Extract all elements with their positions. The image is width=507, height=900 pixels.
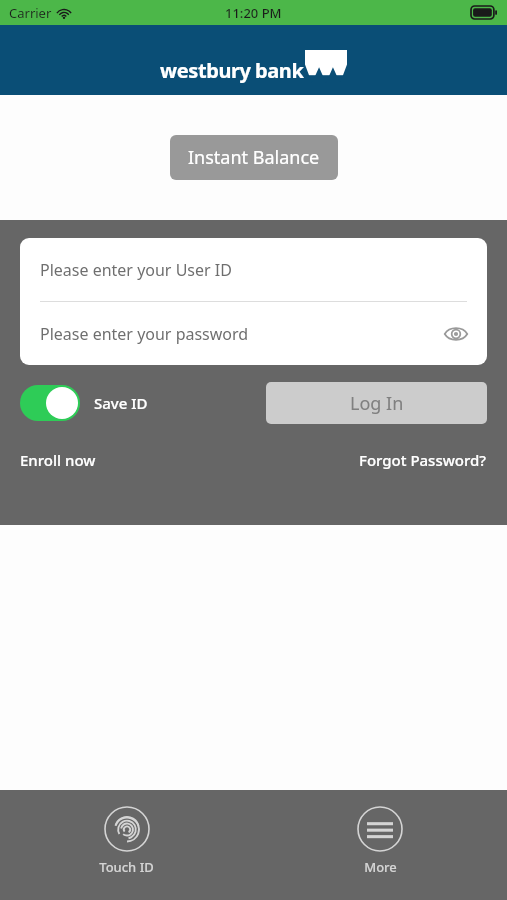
staticText: Forgot Password? [359, 450, 487, 470]
button[interactable]: Log In [266, 382, 487, 424]
button[interactable]: Please enter your password [20, 302, 487, 365]
staticText: Carrier [9, 4, 52, 22]
button[interactable]: Enroll now [20, 450, 96, 470]
button[interactable]: Please enter your User ID [20, 238, 487, 301]
staticText: 11:20 PM [225, 4, 282, 22]
staticText: Log In [350, 391, 404, 416]
button[interactable]: Touch ID login [85, 804, 168, 878]
staticText: Please enter your password [40, 323, 249, 345]
staticText: Save ID [94, 393, 148, 413]
staticText: Touch ID [99, 858, 154, 876]
staticText: westbury [160, 57, 251, 84]
button[interactable]: Show password [439, 317, 473, 351]
button[interactable]: Forgot Password? [359, 450, 487, 470]
button[interactable]: Save ID toggle, on [20, 385, 148, 421]
button[interactable]: Instant Balance [170, 135, 338, 180]
staticText: More [364, 858, 397, 876]
staticText: Please enter your User ID [40, 259, 232, 281]
staticText: bank [255, 57, 304, 84]
other: Save ID toggle, on [20, 385, 80, 421]
staticText: Instant Balance [188, 145, 320, 170]
staticText: Enroll now [20, 450, 96, 470]
button[interactable]: More options [343, 804, 417, 878]
